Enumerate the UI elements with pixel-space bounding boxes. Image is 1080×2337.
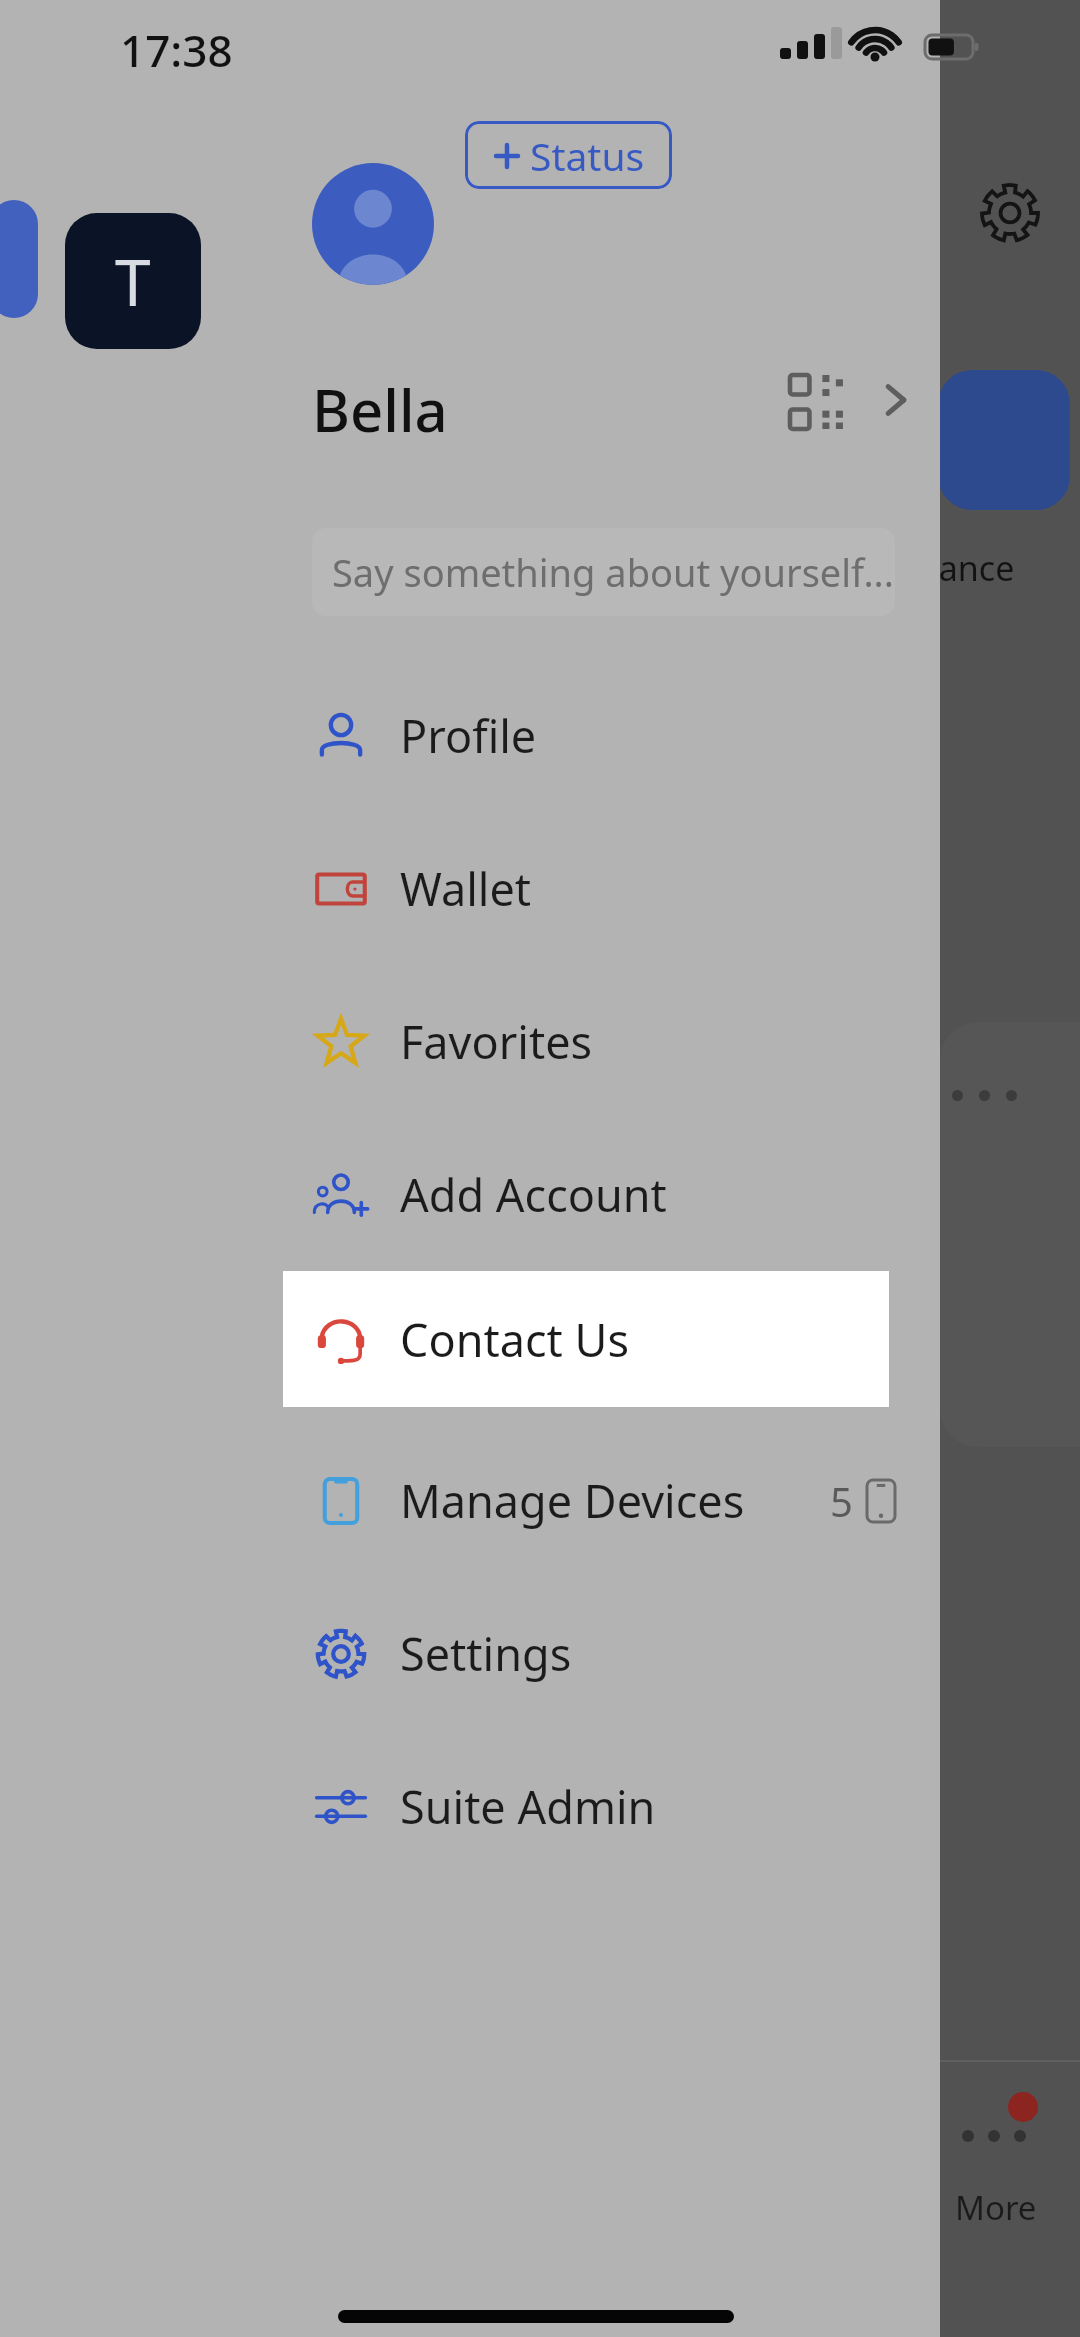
staticText: Manage Devices <box>400 1470 745 1531</box>
staticText: 5 <box>830 1474 853 1528</box>
staticText: lance <box>930 545 1015 591</box>
button[interactable]: Open profile <box>868 372 924 428</box>
staticText: Contact Us <box>400 1309 629 1370</box>
staticText: Say something about yourself... <box>332 546 894 598</box>
button[interactable]: Manage Devices <box>268 1424 940 1577</box>
button[interactable]: Settings <box>975 178 1045 248</box>
staticText: Add Account <box>400 1164 667 1225</box>
button[interactable]: Status <box>465 121 672 189</box>
staticText: Profile <box>400 705 537 766</box>
button[interactable]: Profile photo <box>312 163 434 285</box>
button[interactable]: Wallet <box>268 812 940 965</box>
staticText: Favorites <box>400 1011 593 1072</box>
staticText: 17:38 <box>120 20 233 80</box>
button[interactable]: Favorites <box>268 965 940 1118</box>
button[interactable]: Settings <box>268 1577 940 1730</box>
button[interactable]: Contact Us <box>283 1271 889 1407</box>
staticText: T <box>115 238 151 325</box>
staticText: Bella <box>312 370 448 449</box>
staticText: More <box>955 2185 1037 2230</box>
button[interactable]: Say something about yourself... <box>312 528 895 616</box>
button[interactable]: QR code <box>790 375 844 429</box>
staticText: Status <box>530 129 645 182</box>
staticText: Wallet <box>400 858 532 919</box>
staticText: Settings <box>400 1623 572 1684</box>
staticText: Suite Admin <box>400 1776 656 1837</box>
button[interactable]: Profile <box>268 659 940 812</box>
button[interactable]: Suite Admin <box>268 1730 940 1883</box>
button[interactable]: Add Account <box>268 1118 940 1271</box>
